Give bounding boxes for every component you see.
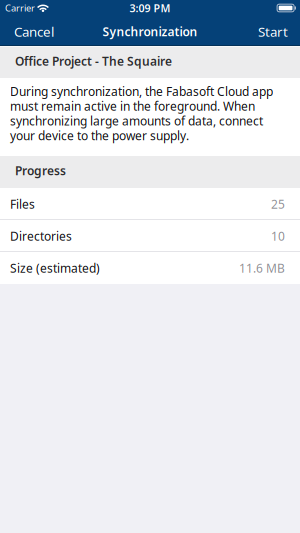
staticText: 3:09 PM	[129, 1, 170, 15]
staticText: Office Project - The Squaire	[15, 53, 172, 69]
staticText: Size (estimated)	[10, 260, 100, 276]
button[interactable]: Cancel	[0, 16, 54, 47]
staticText: Synchronization	[102, 23, 197, 39]
staticText: 11.6 MB	[239, 260, 285, 276]
staticText: Directories	[10, 228, 72, 244]
staticText: Progress	[15, 162, 66, 178]
staticText: Cancel	[14, 23, 54, 40]
staticText: Start	[258, 23, 288, 40]
staticText: 25	[271, 196, 285, 212]
staticText: During synchronization, the Fabasoft Clo…	[10, 83, 273, 99]
staticText: synchronizing large amounts of data, con…	[10, 113, 263, 129]
staticText: Files	[10, 196, 35, 212]
staticText: your device to the power supply.	[10, 128, 189, 143]
staticText: 10	[271, 228, 285, 244]
button[interactable]: Start	[258, 16, 300, 47]
staticText: Carrier	[5, 2, 35, 14]
staticText: must remain active in the foreground. Wh…	[10, 98, 255, 114]
